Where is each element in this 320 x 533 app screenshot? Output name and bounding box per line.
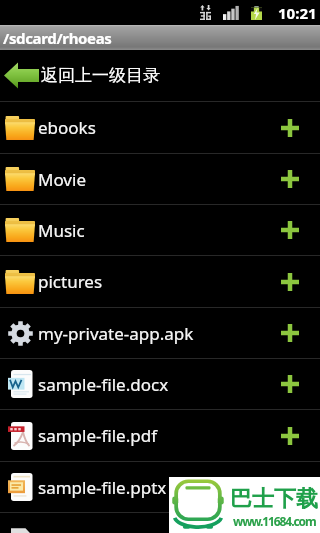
- button[interactable]: ebooks: [0, 102, 320, 153]
- button[interactable]: 返回上一级目录: [0, 50, 320, 101]
- button[interactable]: sample-file.docx: [0, 359, 320, 409]
- button[interactable]: Add: [281, 375, 299, 393]
- button[interactable]: Add: [281, 170, 299, 188]
- button[interactable]: pictures: [0, 256, 320, 307]
- button[interactable]: my-private-app.apk: [0, 308, 320, 358]
- staticText: my-private-app.apk: [38, 322, 281, 345]
- staticText: 巴士下载: [230, 485, 318, 513]
- staticText: 10:21: [278, 3, 317, 23]
- staticText: Movie: [38, 168, 281, 191]
- staticText: www.11684.com: [233, 513, 316, 529]
- button[interactable]: sample-file.pdf: [0, 410, 320, 461]
- button[interactable]: Add: [281, 221, 299, 239]
- button[interactable]: Add: [281, 324, 299, 342]
- button[interactable]: sample-file.txt: [0, 513, 320, 533]
- button[interactable]: Add: [281, 427, 299, 445]
- staticText: sample-file.pdf: [38, 424, 281, 447]
- button[interactable]: Add: [281, 273, 299, 291]
- button[interactable]: sample-file.pptx: [0, 462, 320, 512]
- staticText: pictures: [38, 270, 281, 293]
- staticText: ebooks: [38, 116, 281, 139]
- staticText: 返回上一级目录: [41, 65, 160, 86]
- staticText: /sdcard/rhoeas: [3, 28, 112, 48]
- staticText: sample-file.txt: [38, 527, 281, 533]
- button[interactable]: Add: [281, 478, 299, 496]
- button[interactable]: Add: [281, 119, 299, 137]
- staticText: sample-file.pptx: [38, 476, 281, 499]
- button[interactable]: Music: [0, 205, 320, 255]
- button[interactable]: Movie: [0, 154, 320, 204]
- staticText: sample-file.docx: [38, 373, 281, 396]
- staticText: Music: [38, 219, 281, 242]
